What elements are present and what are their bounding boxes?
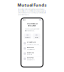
button[interactable]: Bond Plus [22, 56, 42, 61]
staticText: funds, simply [28, 25, 36, 27]
button[interactable]: Index 500 [22, 46, 42, 51]
button[interactable]: Balanced [22, 51, 42, 56]
staticText: Index 500 [27, 47, 34, 48]
staticText: 9:41 [23, 19, 26, 21]
button[interactable]: Explore [24, 34, 31, 39]
staticText: Equity · Large cap [27, 43, 39, 45]
staticText: Choose a goal and we will pick the funds… [24, 28, 39, 31]
staticText: Invest in professionally managed mutual … [18, 8, 46, 15]
button[interactable]: Growth Fund [22, 41, 42, 46]
staticText: Growth Fund [27, 41, 36, 43]
staticText: Balanced [27, 52, 34, 53]
staticText: Explore [24, 36, 30, 38]
staticText: Mutual Funds [17, 2, 46, 7]
staticText: Hybrid [27, 54, 32, 55]
staticText: Bond Plus [27, 57, 34, 59]
staticText: Invest in mutual [26, 23, 37, 25]
button[interactable]: Goals [33, 34, 40, 39]
staticText: Goals [34, 36, 38, 38]
staticText: Equity · Index [27, 48, 35, 50]
staticText: Debt · Short [27, 59, 34, 61]
